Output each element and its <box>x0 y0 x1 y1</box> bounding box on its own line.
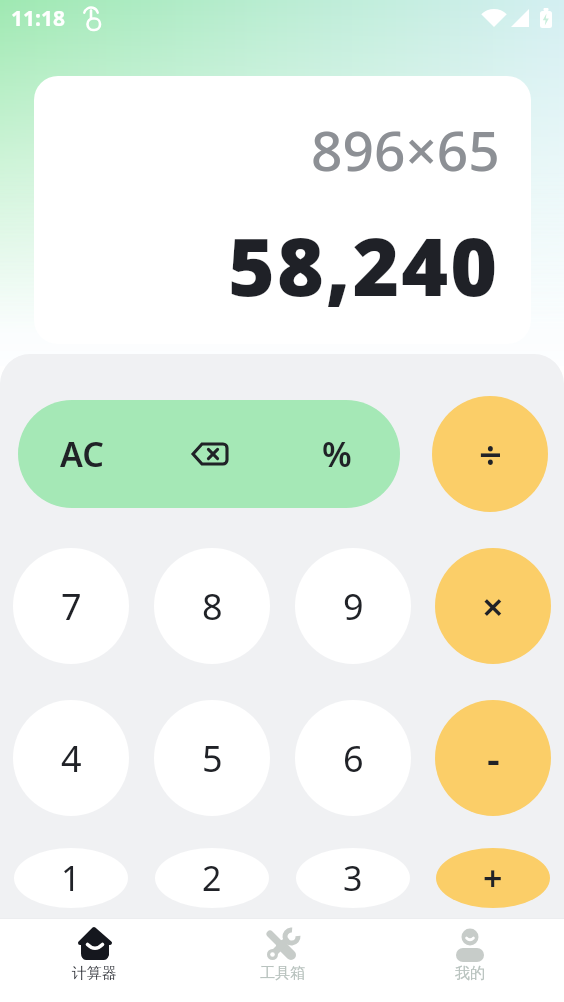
button[interactable]: ÷ <box>432 396 548 512</box>
button[interactable]: % <box>273 400 400 508</box>
button[interactable]: - <box>435 700 551 816</box>
staticText: 3 <box>343 855 363 901</box>
button[interactable]: 3 <box>296 848 410 908</box>
button[interactable]: 工具箱 <box>188 918 376 1002</box>
staticText: % <box>322 431 352 477</box>
button[interactable]: × <box>435 548 551 664</box>
button[interactable]: 我的 <box>376 918 564 1002</box>
button[interactable]: 5 <box>154 700 270 816</box>
staticText: 2 <box>202 855 222 901</box>
staticText: AC <box>60 431 104 477</box>
staticText: 我的 <box>455 964 485 983</box>
staticText: 7 <box>61 582 82 631</box>
staticText: ÷ <box>479 427 502 481</box>
button[interactable]: 4 <box>13 700 129 816</box>
staticText: 6 <box>343 734 364 783</box>
staticText: × <box>482 580 504 632</box>
button[interactable]: 7 <box>13 548 129 664</box>
button[interactable] <box>146 400 273 508</box>
button[interactable]: AC <box>18 400 146 508</box>
staticText: 4 <box>61 734 82 783</box>
staticText: 计算器 <box>72 964 117 983</box>
staticText: + <box>483 855 503 901</box>
button[interactable]: 1 <box>14 848 128 908</box>
button[interactable]: 计算器 <box>0 918 188 1002</box>
staticText: 8 <box>202 582 223 631</box>
staticText: 9 <box>343 582 364 631</box>
staticText: 工具箱 <box>260 964 305 983</box>
button[interactable]: 9 <box>295 548 411 664</box>
staticText: 11:18 <box>11 4 65 33</box>
staticText: 896×65 <box>311 112 500 187</box>
button[interactable]: 6 <box>295 700 411 816</box>
staticText: 1 <box>61 855 81 901</box>
staticText: 58,240 <box>228 210 500 319</box>
button[interactable]: 8 <box>154 548 270 664</box>
button[interactable]: 2 <box>155 848 269 908</box>
staticText: 5 <box>202 734 223 783</box>
staticText: - <box>487 731 500 785</box>
button[interactable]: + <box>436 848 550 908</box>
